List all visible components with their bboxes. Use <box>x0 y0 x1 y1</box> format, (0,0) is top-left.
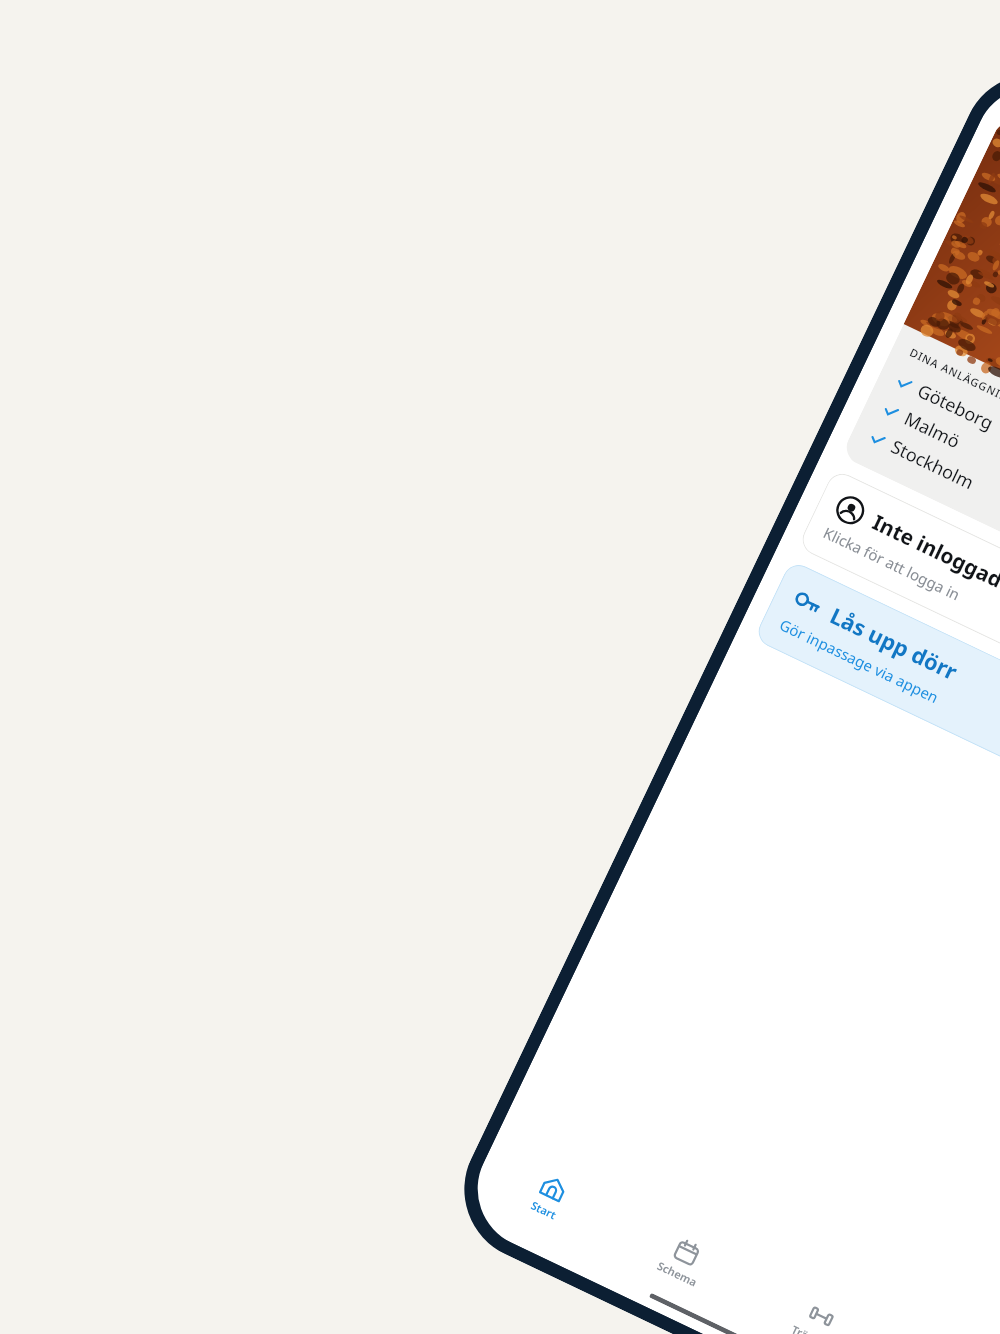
staticText: DINA ANLÄGGNINGAR <box>907 344 1000 416</box>
staticText: Lås upp dörr <box>826 600 963 686</box>
staticText: Schema <box>655 1258 700 1290</box>
button[interactable]: DINA ANLÄGGNINGAR <box>841 116 1000 696</box>
staticText: Inte inloggad <box>868 508 1000 595</box>
button[interactable]: Lås upp dörr <box>753 560 1000 879</box>
staticText: Stockholm <box>887 434 979 495</box>
button[interactable]: Schema <box>602 1200 764 1321</box>
staticText: Klicka för att logga in <box>820 522 963 604</box>
staticText: Start <box>528 1197 559 1222</box>
button[interactable]: Träning <box>736 1263 898 1334</box>
staticText: Malmö <box>900 406 964 454</box>
other: Träning <box>804 1299 839 1334</box>
staticText: Gör inpassage via appen <box>776 614 942 707</box>
staticText: Träning <box>789 1322 833 1334</box>
other: Schema <box>670 1235 704 1270</box>
other: Start <box>536 1171 571 1206</box>
button[interactable]: Inte inloggad <box>797 468 1000 787</box>
button[interactable]: Start <box>469 1136 630 1257</box>
staticText: Göteborg <box>913 378 997 436</box>
